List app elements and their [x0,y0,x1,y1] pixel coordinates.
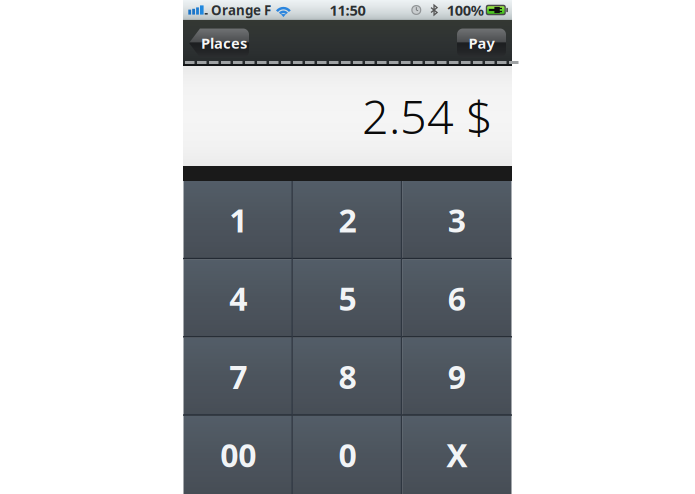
staticText: 00 [220,434,256,476]
button[interactable]: 5 [293,259,402,337]
staticText: 8 [338,355,356,398]
staticText: Pay [468,33,494,53]
button[interactable]: Pay [457,28,506,57]
staticText: Orange F [211,1,271,19]
staticText: 6 [448,277,466,320]
staticText: 3 [448,199,466,241]
staticText: Places [201,33,247,53]
button[interactable]: Places [189,28,249,57]
staticText: 11:50 [329,0,365,20]
staticText: X [446,434,467,476]
staticText: 5 [338,277,356,320]
button[interactable]: 00 [183,416,293,494]
button[interactable]: 1 [183,181,293,259]
button[interactable]: 3 [402,181,511,259]
button[interactable]: 6 [402,259,511,337]
staticText: 4 [229,277,247,320]
staticText: 2.54 $ [362,85,493,147]
staticText: 7 [229,355,247,398]
button[interactable]: 8 [293,337,402,416]
staticText: 100% [447,0,484,20]
button[interactable]: 0 [293,416,402,494]
button[interactable]: 9 [402,337,511,416]
button[interactable]: 4 [183,259,293,337]
staticText: 0 [338,434,356,476]
button[interactable]: X [402,416,511,494]
staticText: 2 [338,199,356,241]
button[interactable]: 2 [293,181,402,259]
staticText: 1 [229,199,247,241]
staticText: 9 [448,355,466,398]
button[interactable]: 7 [183,337,293,416]
